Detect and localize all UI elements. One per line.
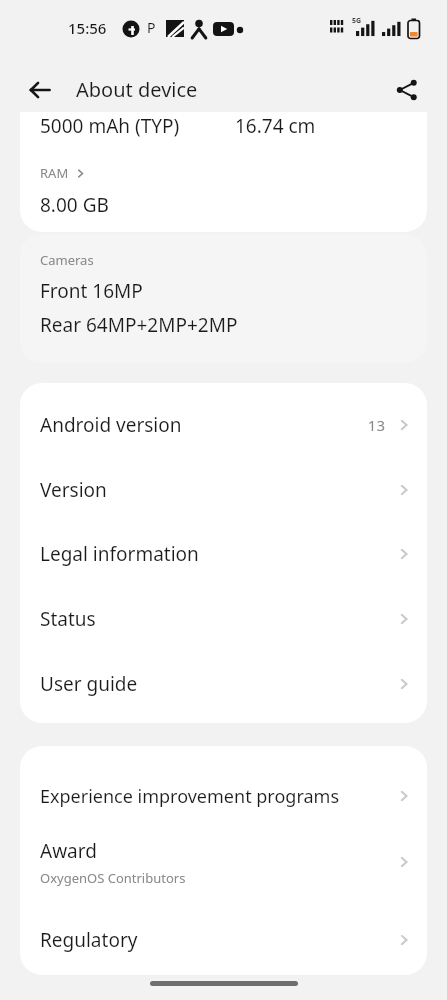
- button[interactable]: Regulatory: [20, 916, 427, 964]
- staticText: Legal information: [40, 541, 199, 567]
- staticText: Front 16MP: [40, 278, 143, 304]
- staticText: 16.74 cm: [235, 113, 316, 139]
- staticText: Status: [40, 606, 96, 632]
- staticText: Experience improvement programs: [40, 784, 340, 809]
- staticText: Regulatory: [40, 927, 138, 953]
- staticText: Rear 64MP+2MP+2MP: [40, 312, 238, 338]
- button[interactable]: User guide: [20, 660, 427, 708]
- staticText: 5000 mAh (TYP): [40, 113, 180, 139]
- button[interactable]: Award: [20, 831, 427, 893]
- button[interactable]: RAM: [40, 164, 86, 182]
- button[interactable]: Android version: [20, 401, 427, 449]
- button[interactable]: Status: [20, 595, 427, 643]
- staticText: 13: [367, 415, 385, 435]
- staticText: Cameras: [40, 251, 94, 269]
- staticText: Version: [40, 477, 107, 503]
- button[interactable]: Legal information: [20, 530, 427, 578]
- staticText: Award: [40, 838, 97, 864]
- staticText: OxygenOS Contributors: [40, 869, 186, 887]
- button[interactable]: Experience improvement programs: [20, 772, 427, 820]
- staticText: RAM: [40, 164, 69, 182]
- button[interactable]: Share: [385, 68, 429, 112]
- staticText: 5G: [352, 16, 362, 26]
- staticText: User guide: [40, 671, 138, 697]
- staticText: About device: [76, 76, 198, 103]
- staticText: P: [147, 18, 156, 37]
- staticText: Android version: [40, 412, 182, 438]
- staticText: 8.00 GB: [40, 192, 109, 218]
- staticText: 15:56: [68, 18, 107, 38]
- button[interactable]: Version: [20, 466, 427, 514]
- button[interactable]: Back: [18, 68, 62, 112]
